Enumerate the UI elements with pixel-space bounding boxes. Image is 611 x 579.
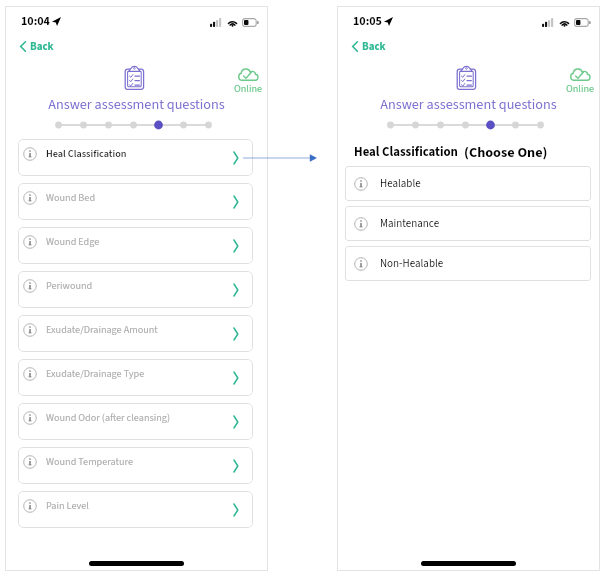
other: Open Exudate/Drainage Type (233, 371, 239, 385)
button[interactable]: Info about Non-Healable (354, 257, 368, 271)
staticText: Non-Healable (380, 256, 444, 272)
staticText: Maintenance (380, 216, 440, 232)
button[interactable]: Info about Exudate/Drainage Type (23, 367, 37, 381)
staticText: 10:04 (21, 13, 50, 30)
button[interactable]: Info about Pain Level (18, 491, 253, 528)
button[interactable]: Info about Wound Temperature (23, 455, 37, 469)
button[interactable]: Info about Wound Edge (23, 235, 37, 249)
button[interactable]: Info about Wound Bed (23, 191, 37, 205)
button[interactable]: Online - connection status (234, 68, 263, 97)
staticText: Pain Level (46, 499, 89, 514)
button[interactable]: Info about Exudate/Drainage Amount (23, 323, 37, 337)
staticText: Exudate/Drainage Amount (46, 323, 158, 338)
other: Open Pain Level (233, 503, 239, 517)
other: Open Exudate/Drainage Amount (233, 327, 239, 341)
other: Open Wound Temperature (233, 459, 239, 473)
other: Open Wound Bed (233, 195, 239, 209)
staticText: Wound Edge (46, 235, 100, 250)
staticText: Back (30, 39, 54, 55)
button[interactable]: Info about Heal Classification (18, 139, 253, 176)
button[interactable]: Info about Healable (345, 166, 591, 201)
staticText: Online (234, 82, 263, 97)
button[interactable]: Online - connection status (566, 68, 595, 97)
button[interactable]: Back (350, 37, 388, 56)
button[interactable]: Info about Maintenance (345, 206, 591, 241)
staticText: Healable (380, 176, 421, 192)
button[interactable]: Info about Healable (354, 177, 368, 191)
staticText: Answer assessment questions (5, 94, 268, 114)
other: Open Wound Edge (233, 239, 239, 253)
staticText: Wound Bed (46, 191, 96, 206)
button[interactable]: Info about Maintenance (354, 217, 368, 231)
staticText: Wound Odor (after cleansing) (46, 411, 171, 426)
button[interactable]: Info about Exudate/Drainage Type (18, 359, 253, 396)
other: Open Wound Odor (after cleansing) (233, 415, 239, 429)
button[interactable]: Info about Non-Healable (345, 246, 591, 281)
staticText: Wound Temperature (46, 455, 134, 470)
button[interactable]: Info about Wound Odor (after cleansing) (18, 403, 253, 440)
button[interactable]: Info about Wound Bed (18, 183, 253, 220)
button[interactable]: Info about Wound Temperature (18, 447, 253, 484)
button[interactable]: Info about Wound Odor (after cleansing) (23, 411, 37, 425)
button[interactable]: Info about Periwound (18, 271, 253, 308)
other: Open Heal Classification (233, 151, 239, 165)
button[interactable]: Info about Pain Level (23, 499, 37, 513)
other: Open Periwound (233, 283, 239, 297)
button[interactable]: Info about Heal Classification (23, 147, 37, 161)
staticText: (Choose One) (464, 142, 548, 162)
staticText: Exudate/Drainage Type (46, 367, 145, 382)
button[interactable]: Info about Exudate/Drainage Amount (18, 315, 253, 352)
staticText: 10:05 (353, 13, 382, 30)
staticText: Online (566, 82, 595, 97)
staticText: Back (362, 39, 386, 55)
staticText: Heal Classification (354, 143, 458, 161)
button[interactable]: Back (18, 37, 56, 56)
staticText: Periwound (46, 279, 93, 294)
button[interactable]: Info about Periwound (23, 279, 37, 293)
staticText: Answer assessment questions (337, 94, 600, 114)
button[interactable]: Info about Wound Edge (18, 227, 253, 264)
staticText: Heal Classification (46, 147, 127, 162)
